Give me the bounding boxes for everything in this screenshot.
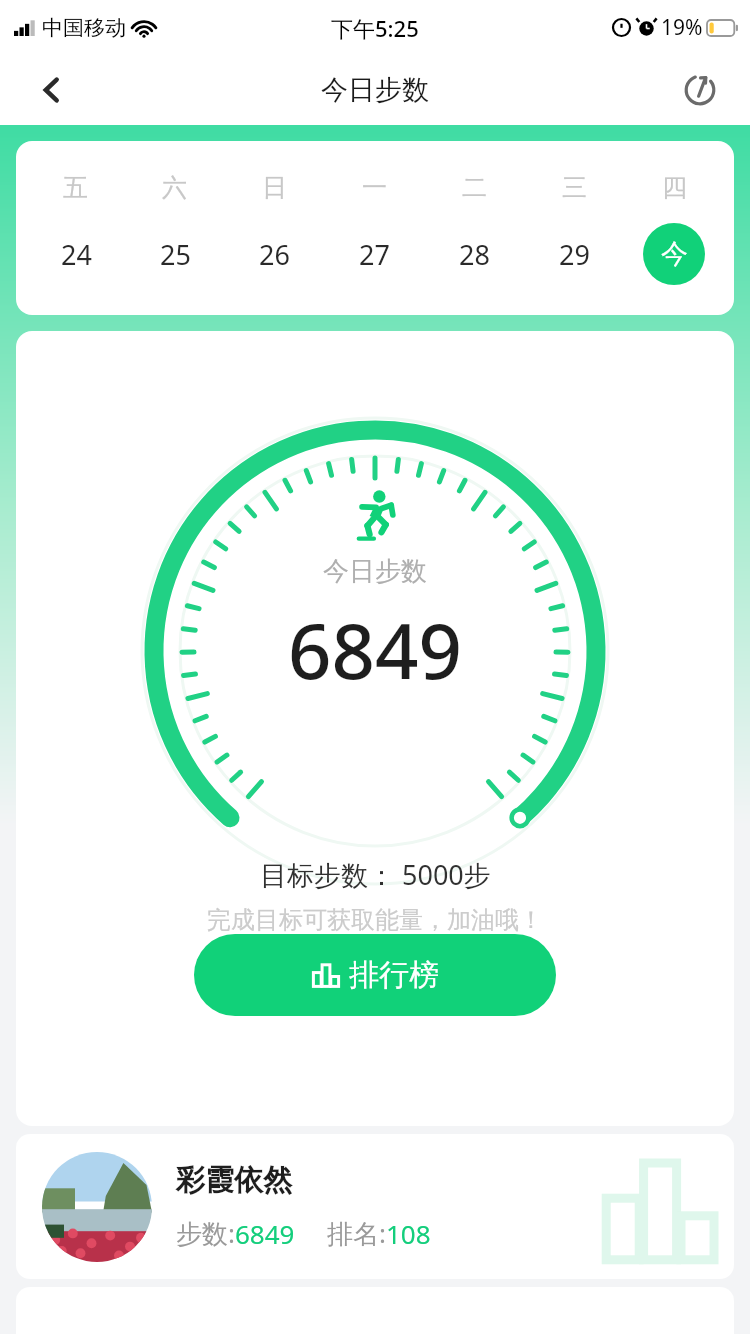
button[interactable]: 五 <box>26 141 125 315</box>
button[interactable]: 四 <box>624 141 724 315</box>
button[interactable]: 一 <box>324 141 424 315</box>
staticText: 日 <box>262 172 287 203</box>
staticText: 步数: <box>176 1215 235 1251</box>
staticText: 五 <box>63 172 88 203</box>
staticText: 三 <box>562 172 587 203</box>
staticText: 目标步数： 5000步 <box>260 856 491 893</box>
staticText: 29 <box>559 236 590 273</box>
button[interactable]: 三 <box>524 141 624 315</box>
staticText: 25 <box>160 236 191 273</box>
staticText: 六 <box>162 172 187 203</box>
staticText: 一 <box>362 172 387 203</box>
button[interactable]: 彩霞依然 <box>16 1134 734 1279</box>
staticText: 24 <box>61 236 92 273</box>
staticText: 今日步数 <box>323 555 427 588</box>
button[interactable]: 排行榜 <box>194 934 556 1016</box>
staticText: 27 <box>359 236 390 273</box>
button[interactable]: 六 <box>125 141 224 315</box>
button[interactable]: 二 <box>424 141 524 315</box>
staticText: 6849 <box>288 598 462 702</box>
staticText: 28 <box>459 236 490 273</box>
staticText: 排行榜 <box>349 956 439 994</box>
staticText: 下午5:25 <box>331 13 419 43</box>
staticText: 二 <box>462 172 487 203</box>
staticText: 今日步数 <box>321 73 429 107</box>
staticText: 中国移动 <box>42 15 126 41</box>
staticText: 今 <box>661 237 688 271</box>
staticText: 彩霞依然 <box>176 1162 292 1199</box>
button[interactable]: Back <box>24 62 80 118</box>
button[interactable]: Share <box>672 62 728 118</box>
staticText: 26 <box>259 236 290 273</box>
button[interactable]: 日 <box>224 141 324 315</box>
staticText: 19% <box>661 13 703 42</box>
staticText: 108 <box>386 1216 431 1251</box>
staticText: 排名: <box>327 1215 386 1251</box>
staticText: 四 <box>662 172 687 203</box>
staticText: 6849 <box>235 1216 295 1251</box>
staticText: 完成目标可获取能量，加油哦！ <box>207 905 543 935</box>
